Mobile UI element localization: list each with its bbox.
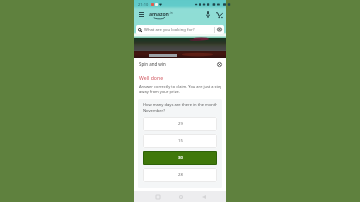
- button[interactable]: 15: [143, 134, 217, 148]
- staticText: Answer correctly to claim. You are just …: [139, 84, 221, 89]
- staticText: .in: [169, 11, 173, 15]
- staticText: Spin and win: [139, 61, 166, 67]
- button[interactable]: Back: [198, 191, 209, 202]
- staticText: November?: [143, 108, 166, 114]
- button[interactable]: 29: [143, 117, 217, 131]
- staticText: What are you looking for?: [144, 27, 195, 33]
- staticText: 15: [178, 138, 183, 144]
- button[interactable]: 30: [143, 151, 217, 165]
- staticText: How many days are there in the month of: [143, 102, 217, 108]
- staticText: away from your prize.: [139, 89, 180, 94]
- staticText: 28: [178, 172, 183, 178]
- button[interactable]: Home: [175, 191, 186, 202]
- staticText: 21:10: [138, 2, 149, 7]
- button[interactable]: Voice search: [203, 10, 212, 19]
- staticText: 29: [178, 121, 183, 127]
- button[interactable]: Close: [215, 60, 223, 68]
- staticText: Well done: [139, 74, 164, 81]
- button[interactable]: Menu: [137, 10, 146, 19]
- button[interactable]: Shopping cart: [215, 10, 224, 19]
- button[interactable]: What are you looking for?: [136, 25, 224, 34]
- button[interactable]: 28: [143, 168, 217, 182]
- button[interactable]: Recent apps: [152, 191, 163, 202]
- staticText: amazon: [149, 10, 169, 17]
- staticText: 30: [178, 155, 183, 161]
